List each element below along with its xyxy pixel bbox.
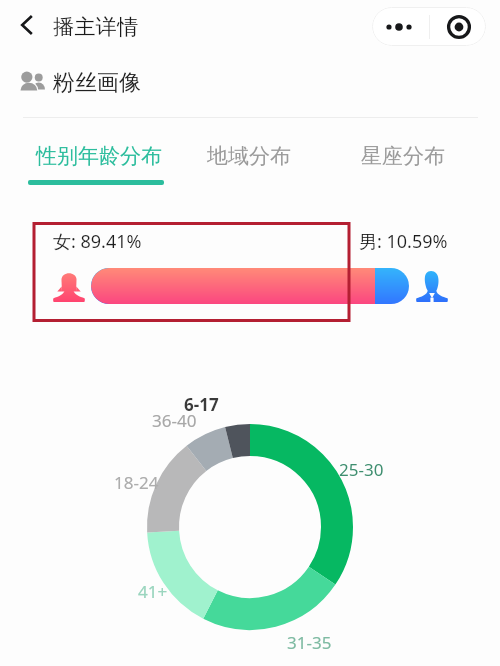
staticText: 粉丝画像 [53, 69, 141, 97]
button[interactable]: 地域分布 [207, 128, 297, 190]
button[interactable]: Back [13, 11, 41, 39]
staticText: 星座分布 [361, 143, 445, 169]
button[interactable]: Close [430, 7, 486, 46]
staticText: 男: 10.59% [359, 229, 448, 254]
button[interactable]: 性别年龄分布 [36, 128, 172, 190]
button[interactable]: More options [372, 7, 429, 46]
button[interactable]: 星座分布 [361, 128, 451, 190]
button[interactable]: 粉丝画像 [20, 62, 141, 104]
staticText: 性别年龄分布 [36, 143, 162, 169]
staticText: 地域分布 [207, 143, 291, 169]
staticText: 18-24 [114, 471, 159, 494]
staticText: 女: 89.41% [53, 229, 142, 254]
staticText: 25-30 [339, 458, 384, 481]
staticText: 41+ [138, 580, 168, 603]
staticText: 36-40 [152, 409, 197, 432]
staticText: 6-17 [184, 393, 219, 416]
staticText: 播主详情 [53, 14, 139, 40]
staticText: 31-35 [287, 631, 332, 654]
